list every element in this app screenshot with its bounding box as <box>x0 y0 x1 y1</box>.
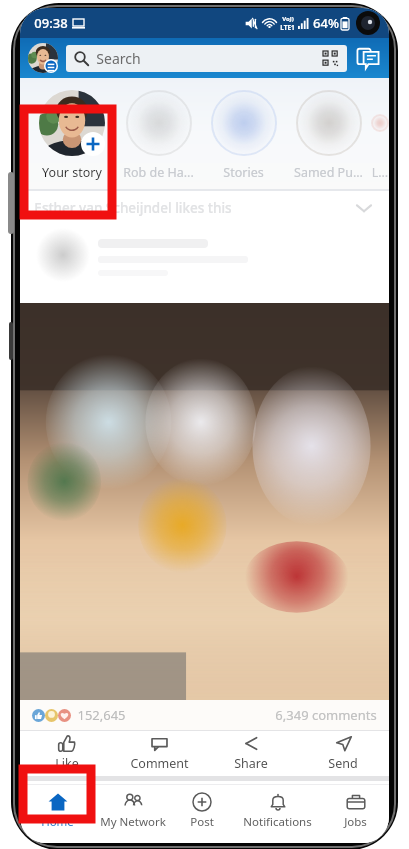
button[interactable]: Messaging <box>355 45 381 71</box>
staticText: Jobs <box>344 814 367 830</box>
button[interactable]: Stories <box>201 84 286 191</box>
staticText: LTE1 <box>280 23 295 32</box>
staticText: 64% <box>313 14 339 32</box>
button[interactable]: Notifications <box>233 785 322 837</box>
button[interactable]: Search <box>66 45 347 72</box>
button[interactable]: Jobs <box>322 785 389 837</box>
staticText: Your story <box>42 164 102 181</box>
staticText: Esther van Scheijndel likes this <box>34 199 232 217</box>
button[interactable]: Samed Pu... <box>286 84 371 191</box>
button[interactable]: Home <box>20 785 95 837</box>
button[interactable]: My Network <box>95 785 170 837</box>
staticText: Send <box>328 755 358 772</box>
staticText: Stories <box>223 164 264 181</box>
staticText: My Network <box>100 814 166 830</box>
button[interactable]: Profile <box>28 43 58 73</box>
staticText: Share <box>234 755 268 772</box>
button[interactable]: Rob de Ha... <box>116 84 201 191</box>
staticText: Linke <box>371 164 389 181</box>
button[interactable]: Your story <box>28 84 116 191</box>
button[interactable]: Comment <box>113 731 205 776</box>
button[interactable]: Scan QR code <box>323 51 339 67</box>
staticText: VoJ) <box>282 15 294 23</box>
staticText: Rob de Ha... <box>123 164 194 181</box>
staticText: Samed Pu... <box>294 164 363 181</box>
staticText: Notifications <box>243 814 312 830</box>
button[interactable]: Share <box>205 731 297 776</box>
staticText: Like <box>55 755 79 772</box>
staticText: 6,349 comments <box>275 706 377 724</box>
button[interactable]: Like <box>20 731 113 776</box>
staticText: 09:38 <box>34 14 68 32</box>
button[interactable]: Send <box>297 731 389 776</box>
staticText: Comment <box>130 755 189 772</box>
staticText: Home <box>41 814 74 830</box>
staticText: Search <box>96 49 141 68</box>
button[interactable]: Linke <box>371 84 389 191</box>
staticText: Post <box>190 814 214 830</box>
button[interactable]: Post <box>170 785 233 837</box>
staticText: 152,645 <box>77 706 126 724</box>
